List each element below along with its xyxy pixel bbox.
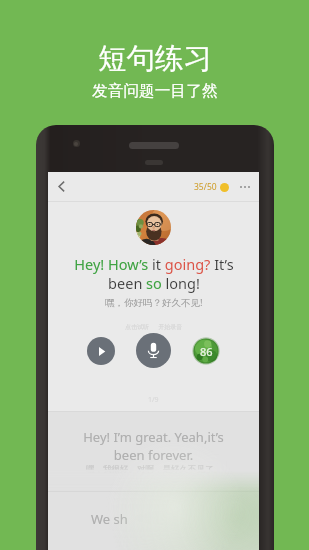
staticText: 点击试听 开始录音 xyxy=(125,323,183,331)
staticText: 1/9 xyxy=(148,395,159,405)
staticText: 嘿，你好吗？好久不见! xyxy=(105,296,203,309)
button[interactable]: Score 86 xyxy=(192,337,220,365)
staticText: We sh xyxy=(91,510,128,528)
button[interactable]: More options xyxy=(236,175,253,199)
staticText: 短句练习 xyxy=(98,41,212,77)
staticText: 86 xyxy=(200,344,213,359)
staticText: 发音问题一目了然 xyxy=(92,81,218,101)
button[interactable]: Play xyxy=(87,337,115,365)
staticText: Hey! How’s it going? It’s been so long! xyxy=(74,254,234,293)
staticText: 嘿，我很好。对啊，是好久不见了。 xyxy=(86,464,222,475)
staticText: 35/50 xyxy=(194,181,217,193)
staticText: Hey! I’m great. Yeah,it’s been forever. xyxy=(83,428,224,464)
button[interactable]: Record xyxy=(136,333,171,368)
button[interactable]: Back xyxy=(48,172,74,201)
